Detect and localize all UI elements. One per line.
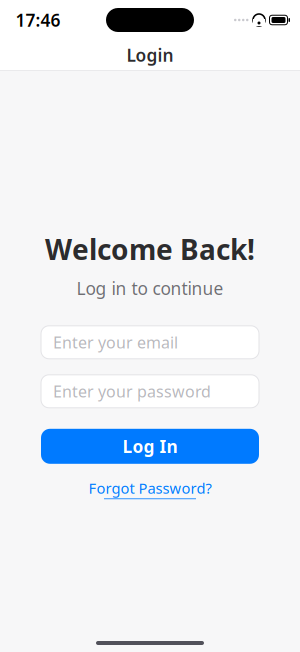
staticText: Log in to continue (76, 277, 223, 300)
staticText: 17:46 (15, 8, 60, 31)
staticText: Enter your password (53, 381, 211, 402)
button[interactable]: Enter your password (41, 375, 259, 408)
staticText: Login (126, 43, 173, 66)
staticText: Enter your email (53, 332, 178, 353)
button[interactable]: Forgot Password? (88, 481, 211, 497)
button[interactable]: Log In (41, 429, 259, 464)
staticText: Log In (122, 435, 177, 458)
staticText: Welcome Back! (45, 231, 255, 268)
button[interactable]: Enter your email (41, 326, 259, 359)
staticText: Forgot Password? (88, 478, 211, 498)
